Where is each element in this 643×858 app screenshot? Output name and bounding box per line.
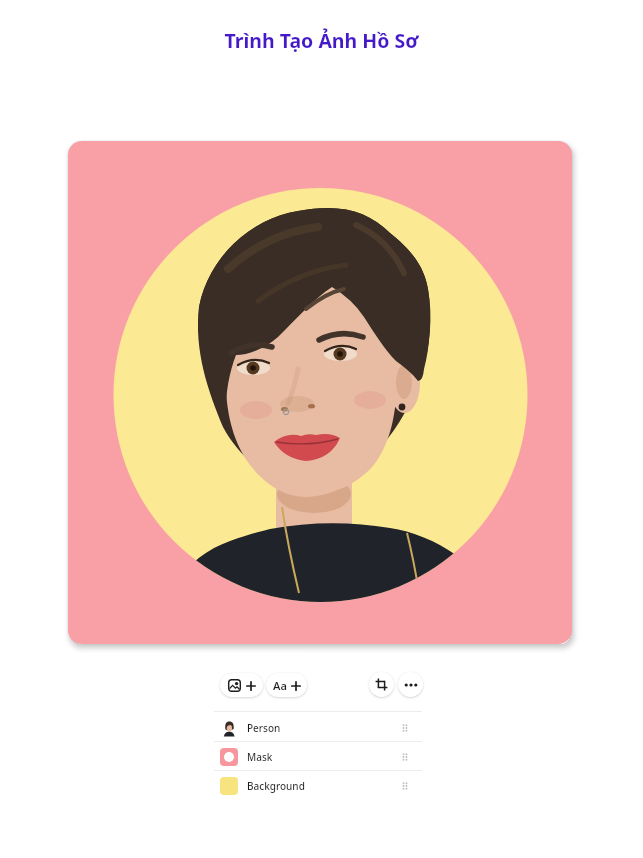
button[interactable]	[220, 673, 263, 697]
button[interactable]	[369, 672, 394, 697]
button[interactable]: Background	[214, 771, 422, 800]
staticText: Person	[247, 721, 281, 735]
staticText: Mask	[247, 750, 273, 764]
staticText: Background	[247, 779, 305, 793]
staticText: Aa	[273, 678, 287, 693]
button[interactable]	[398, 672, 423, 697]
staticText: Trình Tạo Ảnh Hồ Sơ	[0, 27, 643, 54]
button[interactable]: Aa	[266, 673, 307, 697]
button[interactable]: Mask	[214, 742, 422, 771]
button[interactable]: Person	[214, 713, 422, 742]
